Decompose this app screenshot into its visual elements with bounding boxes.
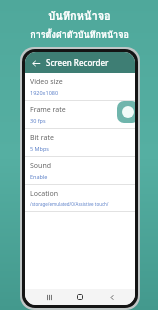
- button[interactable]: Recents: [41, 289, 57, 305]
- staticText: 5 Mbps: [30, 145, 49, 152]
- staticText: Enable: [30, 173, 48, 180]
- button[interactable]: Bit rate: [25, 129, 135, 156]
- button[interactable]: Back: [29, 56, 43, 70]
- staticText: Frame rate: [30, 105, 66, 115]
- staticText: Sound: [30, 161, 52, 171]
- staticText: การตั้งค่าตัวบันทึกหน้าจอ: [30, 28, 129, 42]
- staticText: 1920x1080: [30, 89, 59, 96]
- button[interactable]: Sound: [25, 157, 135, 184]
- staticText: 30 fps: [30, 117, 46, 124]
- button[interactable]: Video size: [25, 73, 135, 100]
- button[interactable]: Location: [25, 185, 135, 211]
- staticText: /storage/emulated/0/Assistive touch/: [30, 201, 109, 207]
- button[interactable]: Back: [104, 289, 120, 305]
- staticText: Location: [30, 189, 59, 199]
- button[interactable]: Frame rate: [25, 101, 135, 128]
- button[interactable]: Assistive touch: [117, 101, 135, 123]
- button[interactable]: Home: [72, 289, 88, 305]
- staticText: Bit rate: [30, 133, 54, 143]
- staticText: Screen Recorder: [46, 57, 109, 68]
- staticText: Video size: [30, 77, 63, 87]
- staticText: บันทึกหน้าจอ: [48, 7, 111, 24]
